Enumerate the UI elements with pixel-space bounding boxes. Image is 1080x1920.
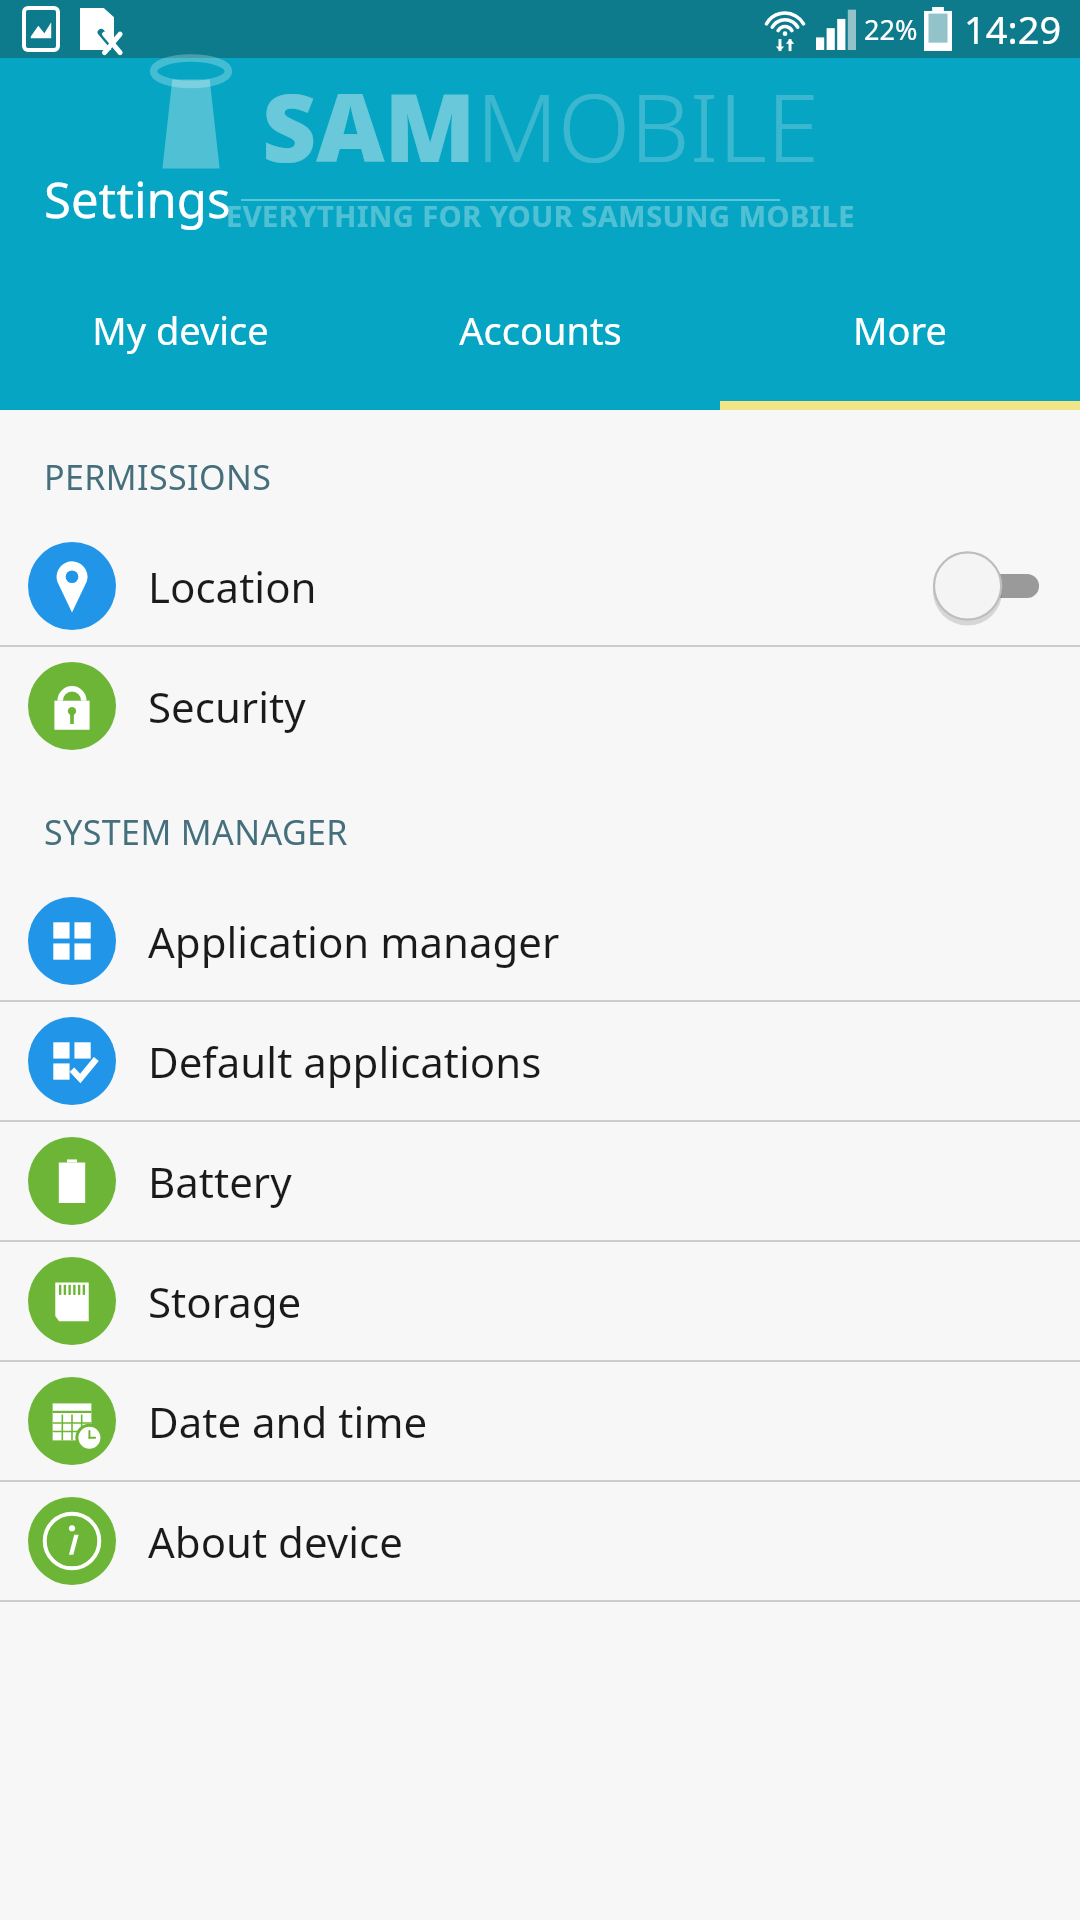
staticText: SYSTEM MANAGER [44,809,348,855]
button[interactable]: Default applications [0,1002,1080,1120]
staticText: SAM [262,62,476,190]
button[interactable]: Date and time [0,1362,1080,1480]
staticText: Default applications [148,1033,542,1090]
staticText: 22% [864,11,918,48]
staticText: Settings [44,166,231,233]
button[interactable]: My device [0,288,360,410]
button[interactable]: Accounts [360,288,720,410]
button[interactable]: Application manager [0,882,1080,1000]
staticText: Location [148,558,317,615]
staticText: About device [148,1513,403,1570]
staticText: MOBILE [476,62,820,190]
button[interactable]: Storage [0,1242,1080,1360]
button[interactable]: About device [0,1482,1080,1600]
button[interactable]: More [720,288,1080,410]
button[interactable]: Security [0,647,1080,765]
staticText: EVERYTHING FOR YOUR SAMSUNG MOBILE [226,196,855,235]
staticText: PERMISSIONS [44,454,272,500]
staticText: Battery [148,1153,292,1210]
staticText: 14:29 [964,3,1062,55]
staticText: My device [92,304,269,356]
button[interactable]: Location [0,527,1080,645]
staticText: More [853,304,947,356]
staticText: Security [148,678,306,735]
button[interactable]: Location toggle [930,546,1046,626]
button[interactable]: Battery [0,1122,1080,1240]
staticText: Application manager [148,913,560,970]
staticText: Date and time [148,1393,428,1450]
staticText: Storage [148,1273,302,1330]
staticText: Accounts [459,304,622,356]
